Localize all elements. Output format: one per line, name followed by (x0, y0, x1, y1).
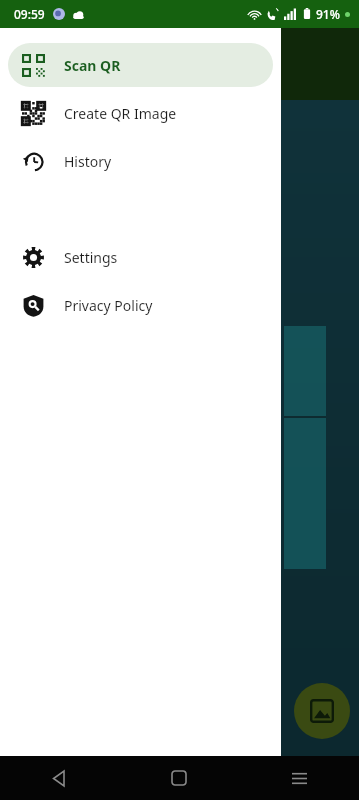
staticText: 09:59 (14, 6, 45, 22)
button[interactable]: Scan QR (8, 43, 273, 87)
button[interactable]: Back (0, 756, 119, 800)
button[interactable]: Pick image (294, 683, 350, 739)
button[interactable]: Privacy Policy (8, 283, 273, 327)
button[interactable]: Create QR Image (8, 91, 273, 135)
button[interactable]: History (8, 139, 273, 183)
button[interactable]: Recent apps (239, 756, 359, 800)
staticText: Scan QR (64, 56, 121, 75)
staticText: 91% (316, 6, 340, 22)
button[interactable]: Home (119, 756, 239, 800)
button[interactable]: Settings (8, 235, 273, 279)
staticText: History (64, 152, 112, 171)
staticText: Create QR Image (64, 104, 177, 123)
staticText: Privacy Policy (64, 296, 153, 315)
staticText: Settings (64, 248, 118, 267)
